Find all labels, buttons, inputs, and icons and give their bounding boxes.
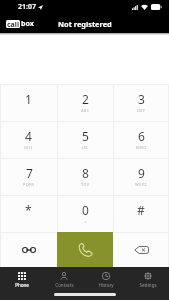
staticText: Settings bbox=[139, 282, 157, 288]
staticText: History bbox=[98, 282, 114, 288]
staticText: Phone bbox=[15, 282, 29, 288]
staticText: WXYZ bbox=[135, 182, 147, 187]
staticText: 8 bbox=[82, 165, 89, 181]
button[interactable]: 2 bbox=[57, 84, 113, 121]
button[interactable]: 3 bbox=[113, 84, 169, 121]
staticText: call bbox=[7, 20, 19, 28]
button[interactable]: 7 bbox=[0, 158, 57, 195]
button[interactable]: 1 bbox=[0, 84, 57, 121]
staticText: 3 bbox=[138, 91, 145, 107]
staticText: 2 bbox=[82, 91, 89, 107]
staticText: 7 bbox=[26, 165, 33, 181]
staticText: 4 bbox=[25, 128, 32, 144]
button[interactable]: Call bbox=[57, 232, 113, 267]
staticText: MNO bbox=[136, 145, 147, 150]
button[interactable]: # bbox=[113, 195, 169, 232]
staticText: GHI bbox=[24, 145, 33, 150]
button[interactable]: 8 bbox=[57, 158, 113, 195]
staticText: 0 bbox=[82, 202, 89, 218]
button[interactable]: 4 bbox=[0, 121, 57, 158]
staticText: * bbox=[25, 202, 32, 218]
button[interactable]: Backspace bbox=[113, 232, 169, 267]
staticText: TUV bbox=[81, 182, 90, 187]
staticText: Contacts bbox=[55, 282, 74, 288]
staticText: + bbox=[84, 219, 87, 224]
button[interactable]: 9 bbox=[113, 158, 169, 195]
staticText: DEF bbox=[137, 108, 146, 113]
staticText: PQRS bbox=[23, 182, 35, 187]
staticText: box bbox=[21, 19, 34, 29]
staticText: 6 bbox=[138, 128, 145, 144]
button[interactable]: Voicemail bbox=[0, 232, 57, 267]
staticText: JKL bbox=[82, 145, 89, 150]
button[interactable]: Phone bbox=[0, 269, 43, 291]
staticText: # bbox=[137, 202, 145, 218]
staticText: Not registered bbox=[58, 19, 112, 29]
staticText: 9 bbox=[138, 165, 145, 181]
button[interactable]: Contacts bbox=[43, 269, 85, 291]
button[interactable]: 0 bbox=[57, 195, 113, 232]
button[interactable]: * bbox=[0, 195, 57, 232]
staticText: 5 bbox=[82, 128, 89, 144]
button[interactable]: History bbox=[85, 269, 127, 291]
button[interactable]: 5 bbox=[57, 121, 113, 158]
button[interactable]: Settings bbox=[127, 269, 169, 291]
staticText: 21:07 bbox=[18, 2, 36, 12]
button[interactable]: 6 bbox=[113, 121, 169, 158]
staticText: ABC bbox=[81, 108, 90, 113]
staticText: 1 bbox=[25, 91, 32, 107]
